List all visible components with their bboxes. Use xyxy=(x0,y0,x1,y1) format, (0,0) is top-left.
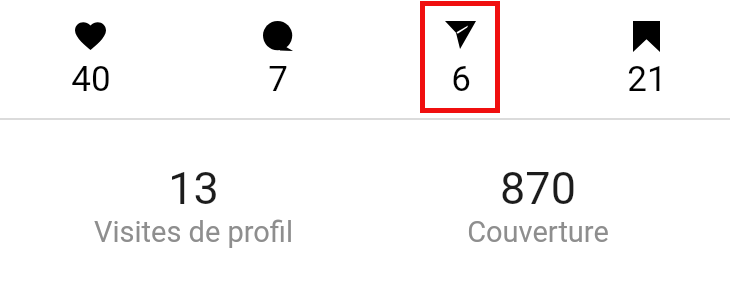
staticText: Couverture xyxy=(467,215,609,249)
button[interactable]: Likes 40 xyxy=(31,6,151,108)
button[interactable]: Saves 21 xyxy=(587,6,707,108)
staticText: 40 xyxy=(71,59,111,95)
staticText: Visites de profil xyxy=(94,215,293,249)
staticText: 7 xyxy=(268,59,288,95)
button[interactable]: Shares 6 xyxy=(401,6,521,108)
staticText: 21 xyxy=(627,59,667,95)
staticText: 6 xyxy=(451,59,471,95)
button[interactable]: Comments 7 xyxy=(218,6,338,108)
button[interactable]: 870 xyxy=(373,150,703,258)
staticText: 870 xyxy=(500,162,576,212)
button[interactable]: 13 xyxy=(28,150,358,258)
staticText: 13 xyxy=(168,162,219,212)
